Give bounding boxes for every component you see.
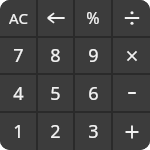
- staticText: 9: [88, 43, 99, 68]
- staticText: 3: [88, 119, 99, 144]
- button[interactable]: Backspace: [38, 0, 73, 36]
- staticText: 6: [88, 81, 99, 106]
- button[interactable]: Multiply: [113, 38, 150, 73]
- button[interactable]: 7: [0, 38, 36, 73]
- button[interactable]: 9: [75, 38, 111, 73]
- button[interactable]: 6: [75, 75, 111, 111]
- staticText: 2: [50, 119, 61, 144]
- button[interactable]: 1: [0, 113, 36, 150]
- staticText: AC: [9, 8, 28, 28]
- button[interactable]: 5: [38, 75, 73, 111]
- button[interactable]: Divide: [113, 0, 150, 36]
- staticText: 1: [13, 119, 24, 144]
- button[interactable]: 4: [0, 75, 36, 111]
- button[interactable]: Subtract: [113, 75, 150, 111]
- button[interactable]: 3: [75, 113, 111, 150]
- staticText: 4: [13, 81, 24, 106]
- button[interactable]: 2: [38, 113, 73, 150]
- staticText: %: [86, 7, 100, 29]
- button[interactable]: 8: [38, 38, 73, 73]
- staticText: 7: [13, 43, 24, 68]
- button[interactable]: AC: [0, 0, 36, 36]
- button[interactable]: %: [75, 0, 111, 36]
- staticText: 8: [50, 43, 61, 68]
- staticText: 5: [50, 81, 61, 106]
- button[interactable]: Add: [113, 113, 150, 150]
